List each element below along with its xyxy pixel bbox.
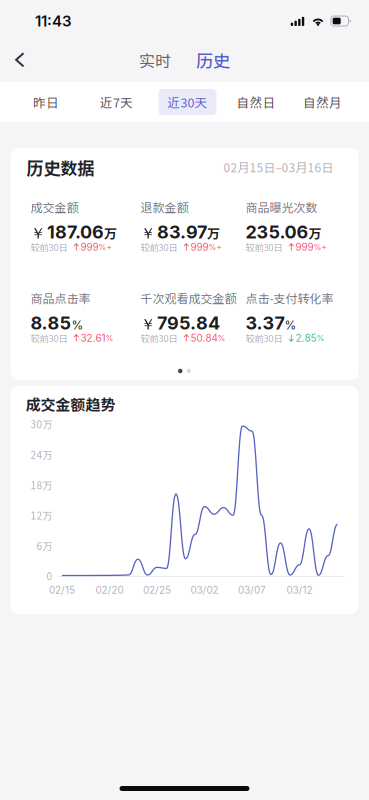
staticText: 自然月: [303, 93, 342, 111]
staticText: 较前30日: [140, 240, 177, 254]
staticText: 6万: [36, 538, 52, 553]
staticText: 50.84: [191, 332, 218, 344]
staticText: 实时: [139, 48, 171, 72]
staticText: 8.85: [30, 312, 71, 334]
staticText: 自然日: [236, 93, 275, 111]
staticText: 999: [191, 241, 209, 253]
staticText: 万: [207, 223, 220, 242]
staticText: 较前30日: [245, 240, 282, 254]
staticText: 较前30日: [30, 331, 67, 345]
staticText: 0: [46, 569, 52, 583]
staticText: 较前30日: [245, 331, 282, 345]
staticText: 成交金额趋势: [25, 393, 115, 415]
staticText: 历史数据: [26, 155, 94, 179]
staticText: 03/02: [190, 584, 218, 596]
staticText: 999: [81, 241, 99, 253]
staticText: 999: [296, 241, 314, 253]
staticText: 11:43: [35, 12, 72, 30]
staticText: %: [218, 333, 226, 343]
staticText: 较前30日: [30, 240, 67, 254]
staticText: %: [71, 318, 83, 332]
staticText: 24万: [30, 447, 52, 462]
button[interactable]: 近7天: [91, 89, 142, 115]
staticText: 3.37: [245, 312, 284, 334]
button[interactable]: 自然月: [294, 89, 351, 115]
staticText: 商品曝光次数: [245, 198, 317, 216]
staticText: %+: [314, 242, 327, 252]
staticText: 昨日: [33, 93, 59, 111]
staticText: 近7天: [100, 93, 133, 111]
button[interactable]: 实时: [133, 42, 177, 78]
staticText: 2.85: [296, 332, 317, 344]
staticText: %+: [99, 242, 112, 252]
button[interactable]: 返回: [0, 42, 40, 78]
staticText: 万: [104, 223, 117, 242]
staticText: 近30天: [167, 93, 207, 111]
staticText: 千次观看成交金额: [140, 289, 236, 307]
staticText: 30万: [30, 417, 52, 431]
staticText: 32.61: [81, 332, 106, 344]
staticText: 点击-支付转化率: [245, 289, 333, 307]
staticText: %: [317, 333, 325, 343]
staticText: ￥: [140, 315, 155, 334]
staticText: 历史: [196, 48, 230, 72]
staticText: 02/20: [95, 584, 123, 596]
staticText: %+: [209, 242, 222, 252]
staticText: 退款金额: [140, 198, 188, 216]
staticText: %: [106, 333, 114, 343]
staticText: 02月15日–03月16日: [223, 158, 333, 176]
staticText: 795.84: [157, 312, 220, 334]
button[interactable]: 自然日: [227, 89, 284, 115]
staticText: 12万: [30, 508, 52, 522]
staticText: 商品点击率: [30, 289, 90, 307]
button[interactable]: 昨日: [24, 89, 68, 115]
staticText: %: [284, 318, 296, 332]
staticText: 成交金额: [30, 198, 78, 216]
staticText: 02/25: [143, 584, 171, 596]
staticText: 03/12: [286, 584, 312, 596]
staticText: 83.97: [157, 221, 207, 243]
staticText: 235.06: [245, 221, 308, 243]
staticText: 万: [308, 223, 321, 242]
staticText: 02/15: [49, 584, 75, 596]
staticText: 较前30日: [140, 331, 177, 345]
button[interactable]: 近30天: [158, 89, 216, 115]
staticText: ￥: [140, 224, 155, 243]
staticText: 03/07: [238, 584, 266, 596]
staticText: 187.06: [47, 221, 104, 243]
button[interactable]: 历史: [190, 42, 236, 78]
staticText: ￥: [30, 224, 45, 243]
staticText: 18万: [30, 478, 52, 492]
